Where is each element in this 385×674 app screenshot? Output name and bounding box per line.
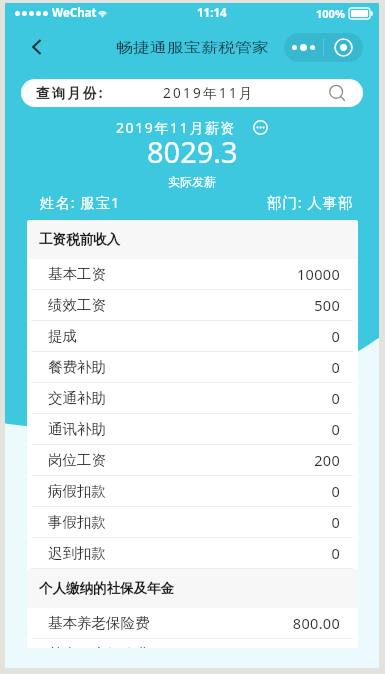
staticText: 0 (331, 512, 340, 532)
staticText: 0 (331, 543, 340, 563)
button[interactable]: 基本工资 (27, 259, 358, 290)
staticText: 500 (314, 295, 340, 315)
staticText: 2019年11月 (163, 84, 255, 102)
staticText: 2019年11月薪资 (116, 118, 237, 137)
staticText: WeChat (52, 5, 97, 21)
staticText: 10000 (297, 264, 340, 284)
button[interactable]: 岗位工资 (27, 445, 358, 476)
staticText: 餐费补助 (48, 358, 106, 376)
staticText: 个人缴纳的社保及年金 (39, 580, 174, 597)
button[interactable]: 提成 (27, 321, 358, 352)
staticText: 事假扣款 (48, 513, 106, 531)
staticText: 实际发薪 (168, 174, 216, 189)
button[interactable]: 事假扣款 (27, 507, 358, 538)
button[interactable]: 迟到扣款 (27, 538, 358, 569)
staticText: 8029.3 (147, 132, 238, 171)
staticText: 0 (331, 388, 340, 408)
button[interactable]: 绩效工资 (27, 290, 358, 321)
button[interactable]: 餐费补助 (27, 352, 358, 383)
staticText: 0 (331, 326, 340, 346)
staticText: 查询月份: (36, 84, 105, 102)
staticText: 基本医疗保险费 (48, 645, 150, 648)
button[interactable]: More salary details (253, 120, 268, 135)
button[interactable]: 通讯补助 (27, 414, 358, 445)
staticText: 畅捷通服宝薪税管家 (116, 39, 269, 56)
button[interactable]: Mini program menu (284, 33, 363, 62)
staticText: 11:14 (197, 5, 227, 21)
button[interactable]: Back (21, 31, 53, 63)
button[interactable]: 基本养老保险费 (27, 608, 358, 639)
staticText: 交通补助 (48, 389, 106, 407)
button[interactable]: 查询月份: (21, 79, 363, 107)
staticText: 基本工资 (48, 265, 106, 283)
button[interactable]: 基本医疗保险费 (27, 639, 358, 648)
staticText: 病假扣款 (48, 482, 106, 500)
staticText: 100% (316, 6, 345, 21)
staticText: 0 (331, 481, 340, 501)
staticText: 通讯补助 (48, 420, 106, 438)
button[interactable]: 病假扣款 (27, 476, 358, 507)
staticText: 岗位工资 (48, 451, 106, 469)
staticText: 200 (314, 450, 340, 470)
staticText: 姓名: 服宝1 (40, 192, 121, 212)
staticText: 800.00 (292, 613, 340, 633)
staticText: 部门: 人事部 (267, 192, 354, 212)
staticText: 基本养老保险费 (48, 614, 150, 632)
button[interactable]: 交通补助 (27, 383, 358, 414)
staticText: 工资税前收入 (39, 231, 120, 248)
staticText: 迟到扣款 (48, 544, 106, 562)
staticText: 0 (331, 357, 340, 377)
staticText: 0 (331, 419, 340, 439)
staticText: 绩效工资 (48, 296, 106, 314)
staticText: 提成 (48, 327, 77, 345)
